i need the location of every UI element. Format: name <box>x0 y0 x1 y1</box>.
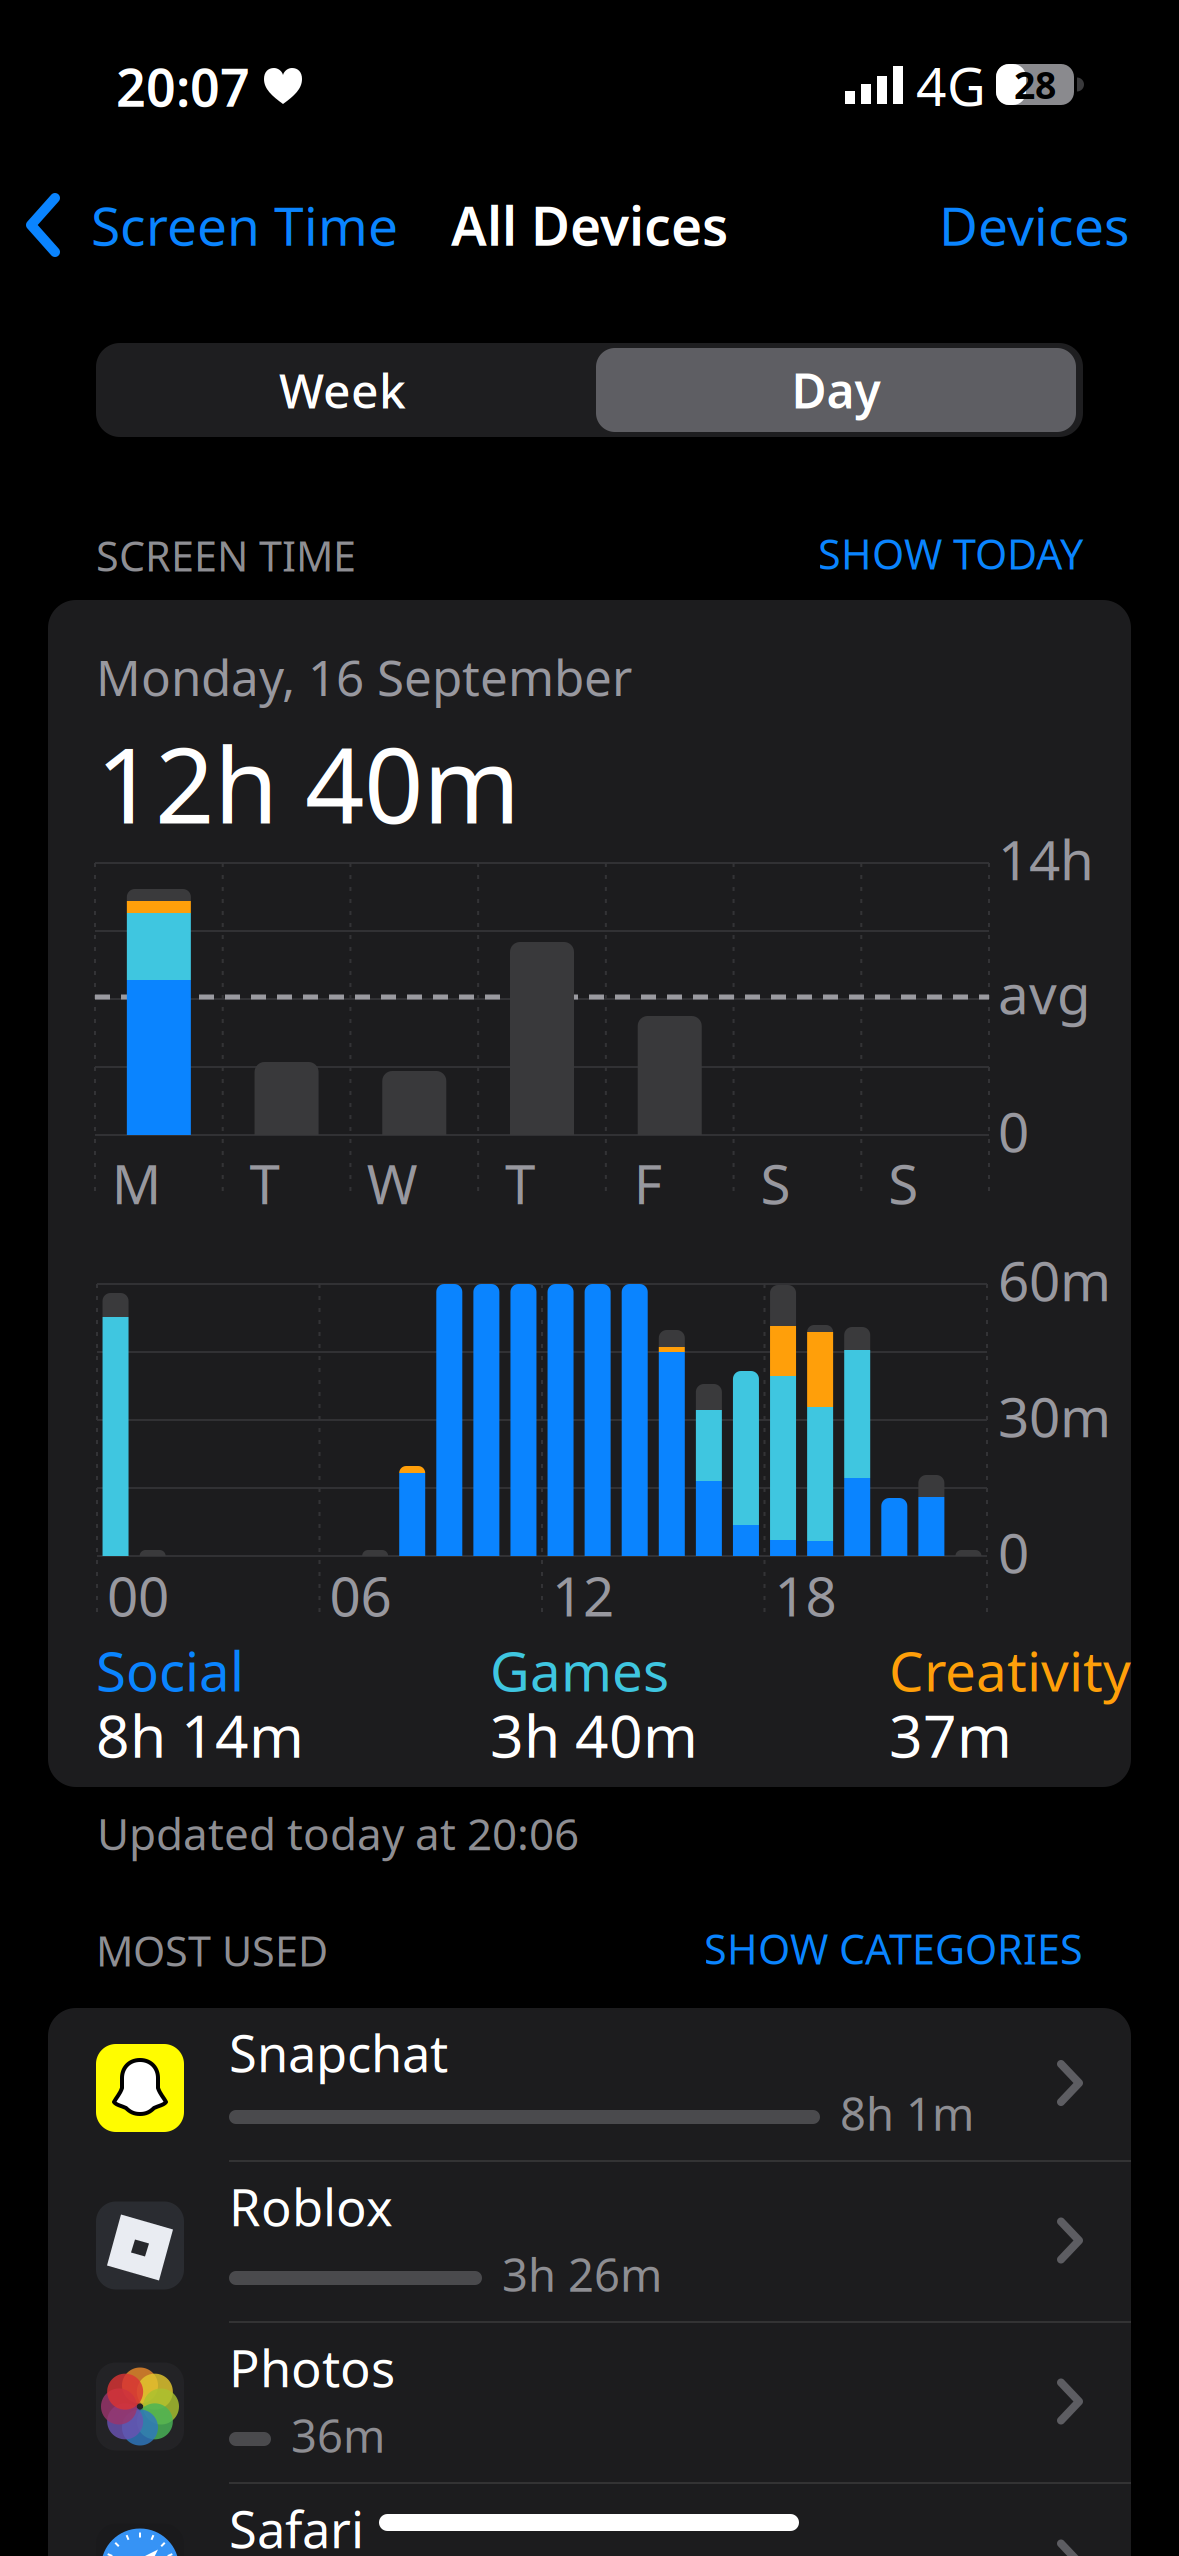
staticText: SCREEN TIME <box>96 528 356 583</box>
staticText: 60m <box>998 1244 1111 1316</box>
staticText: Safari <box>229 2495 364 2556</box>
staticText: 20:07 <box>116 52 250 121</box>
staticText: 28 <box>1014 60 1056 109</box>
staticText: 37m <box>889 1696 1012 1774</box>
staticText: Week <box>279 358 406 422</box>
staticText: 8h 1m <box>840 2083 974 2143</box>
staticText: 0 <box>998 1516 1029 1588</box>
staticText: 4G <box>916 50 986 121</box>
staticText: Monday, 16 September <box>96 644 632 709</box>
staticText: 06 <box>329 1559 391 1632</box>
staticText: Social <box>96 1634 244 1707</box>
staticText: Games <box>490 1634 669 1707</box>
staticText: 0 <box>998 1095 1029 1167</box>
staticText: Photos <box>229 2334 395 2401</box>
staticText: Snapchat <box>229 2019 448 2086</box>
staticText: 00 <box>107 1559 169 1632</box>
staticText: MOST USED <box>96 1923 328 1978</box>
staticText: M <box>112 1147 162 1219</box>
staticText: Updated today at 20:06 <box>97 1804 579 1862</box>
staticText: Creativity <box>889 1634 1131 1707</box>
staticText: 30m <box>998 1380 1111 1452</box>
staticText: W <box>367 1147 418 1219</box>
button[interactable]: Week <box>96 343 589 437</box>
staticText: Day <box>791 358 880 422</box>
button[interactable]: Day <box>589 343 1083 437</box>
button[interactable]: Snapchat <box>48 2008 1131 2162</box>
staticText: 14h <box>998 823 1094 895</box>
staticText: SHOW TODAY <box>818 526 1083 581</box>
staticText: T <box>250 1147 280 1219</box>
staticText: 36m <box>291 2405 385 2465</box>
staticText: 8h 14m <box>96 1696 304 1774</box>
staticText: S <box>888 1147 918 1219</box>
button[interactable]: Photos <box>48 2323 1131 2484</box>
button[interactable]: SHOW CATEGORIES <box>704 1921 1083 1976</box>
staticText: S <box>760 1147 790 1219</box>
staticText: All Devices <box>451 190 728 260</box>
staticText: Screen Time <box>91 190 398 260</box>
staticText: 3h 40m <box>490 1696 698 1774</box>
staticText: avg <box>998 957 1091 1029</box>
button[interactable]: Roblox <box>48 2162 1131 2323</box>
staticText: T <box>505 1147 535 1219</box>
button[interactable]: SHOW TODAY <box>818 526 1083 581</box>
staticText: SHOW CATEGORIES <box>704 1921 1083 1976</box>
button[interactable]: Devices <box>939 170 1130 280</box>
staticText: Devices <box>939 190 1130 260</box>
staticText: 12h 40m <box>96 714 520 852</box>
staticText: 3h 26m <box>502 2244 662 2304</box>
button[interactable]: Screen Time <box>27 170 398 280</box>
staticText: 18 <box>774 1559 836 1632</box>
staticText: F <box>634 1147 662 1219</box>
button[interactable]: Safari <box>48 2484 1131 2556</box>
staticText: 12 <box>552 1559 614 1632</box>
staticText: Roblox <box>229 2173 393 2240</box>
